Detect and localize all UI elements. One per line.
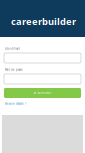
staticText: Mot de passe <box>5 68 23 71</box>
staticText: careerbuilder <box>11 15 76 28</box>
staticText: Identifiant <box>5 47 20 50</box>
button[interactable]: Besoin d'aide ? <box>5 102 26 105</box>
staticText: Besoin d'aide ? <box>5 102 26 105</box>
staticText: Se connecter <box>33 91 51 95</box>
button[interactable]: Se connecter <box>4 88 81 98</box>
